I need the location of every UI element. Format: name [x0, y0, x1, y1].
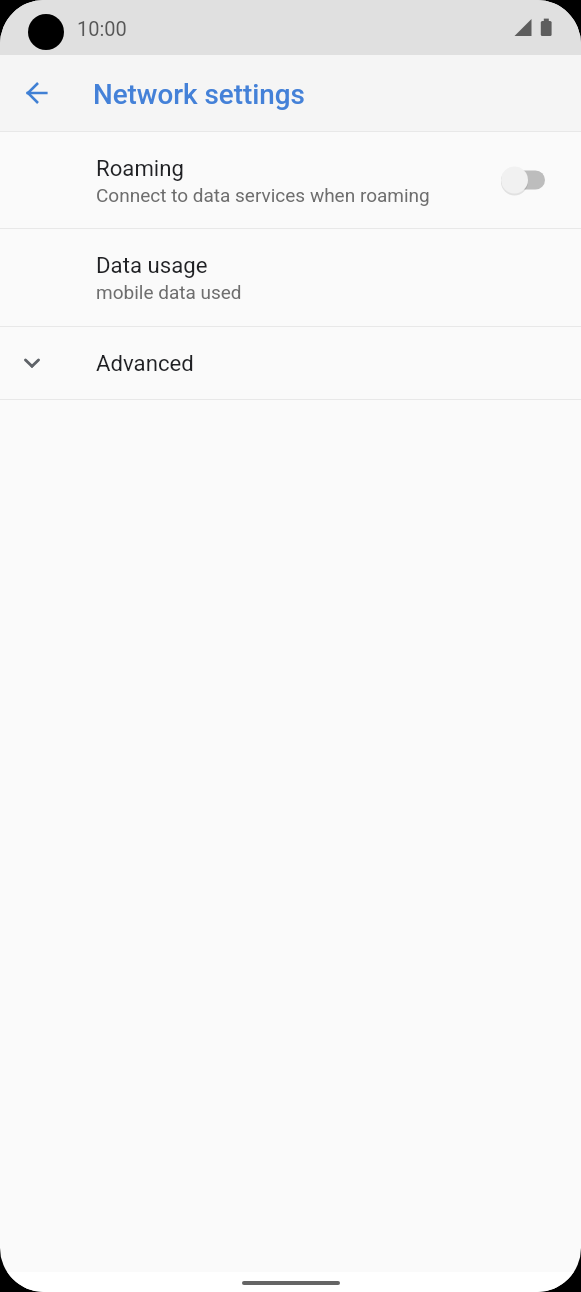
staticText: Network settings — [93, 78, 305, 111]
staticText: Data usage — [96, 252, 208, 278]
staticText: Connect to data services when roaming — [96, 184, 430, 206]
button[interactable]: Expand advanced settings — [0, 327, 581, 399]
button[interactable]: Data usage — [0, 229, 581, 326]
button[interactable]: Back — [13, 69, 61, 117]
staticText: 10:00 — [77, 17, 127, 40]
other: Expand advanced settings — [8, 339, 56, 387]
button[interactable]: Roaming toggle — [488, 150, 564, 210]
staticText: Roaming — [96, 155, 184, 181]
button[interactable]: Roaming — [0, 132, 581, 228]
staticText: mobile data used — [96, 281, 242, 303]
staticText: Advanced — [96, 350, 194, 376]
